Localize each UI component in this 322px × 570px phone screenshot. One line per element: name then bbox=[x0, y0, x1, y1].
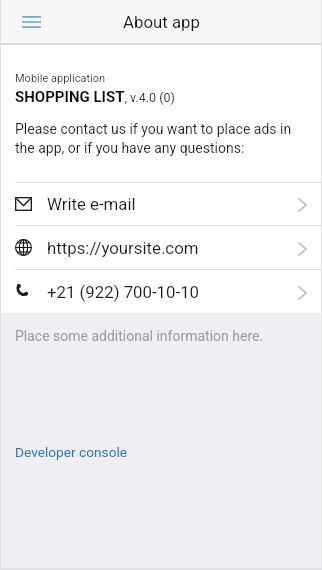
staticText: Please contact us if you want to place a… bbox=[15, 121, 304, 156]
button[interactable]: +21 (922) 700-10-10 bbox=[0, 270, 322, 313]
staticText: Place some additional information here. bbox=[15, 328, 264, 344]
staticText: SHOPPING LIST, v.4.0 (0) bbox=[15, 88, 175, 106]
button[interactable]: Open navigation menu bbox=[14, 5, 48, 39]
button[interactable]: https://yoursite.com bbox=[0, 226, 322, 269]
staticText: Developer console bbox=[15, 444, 128, 460]
staticText: About app bbox=[123, 12, 200, 32]
staticText: Mobile application bbox=[15, 72, 106, 85]
button[interactable]: Write e-mail bbox=[0, 183, 322, 225]
staticText: https://yoursite.com bbox=[47, 238, 199, 258]
staticText: +21 (922) 700-10-10 bbox=[47, 282, 200, 302]
staticText: Write e-mail bbox=[47, 194, 136, 214]
button[interactable]: Developer console bbox=[15, 444, 128, 460]
